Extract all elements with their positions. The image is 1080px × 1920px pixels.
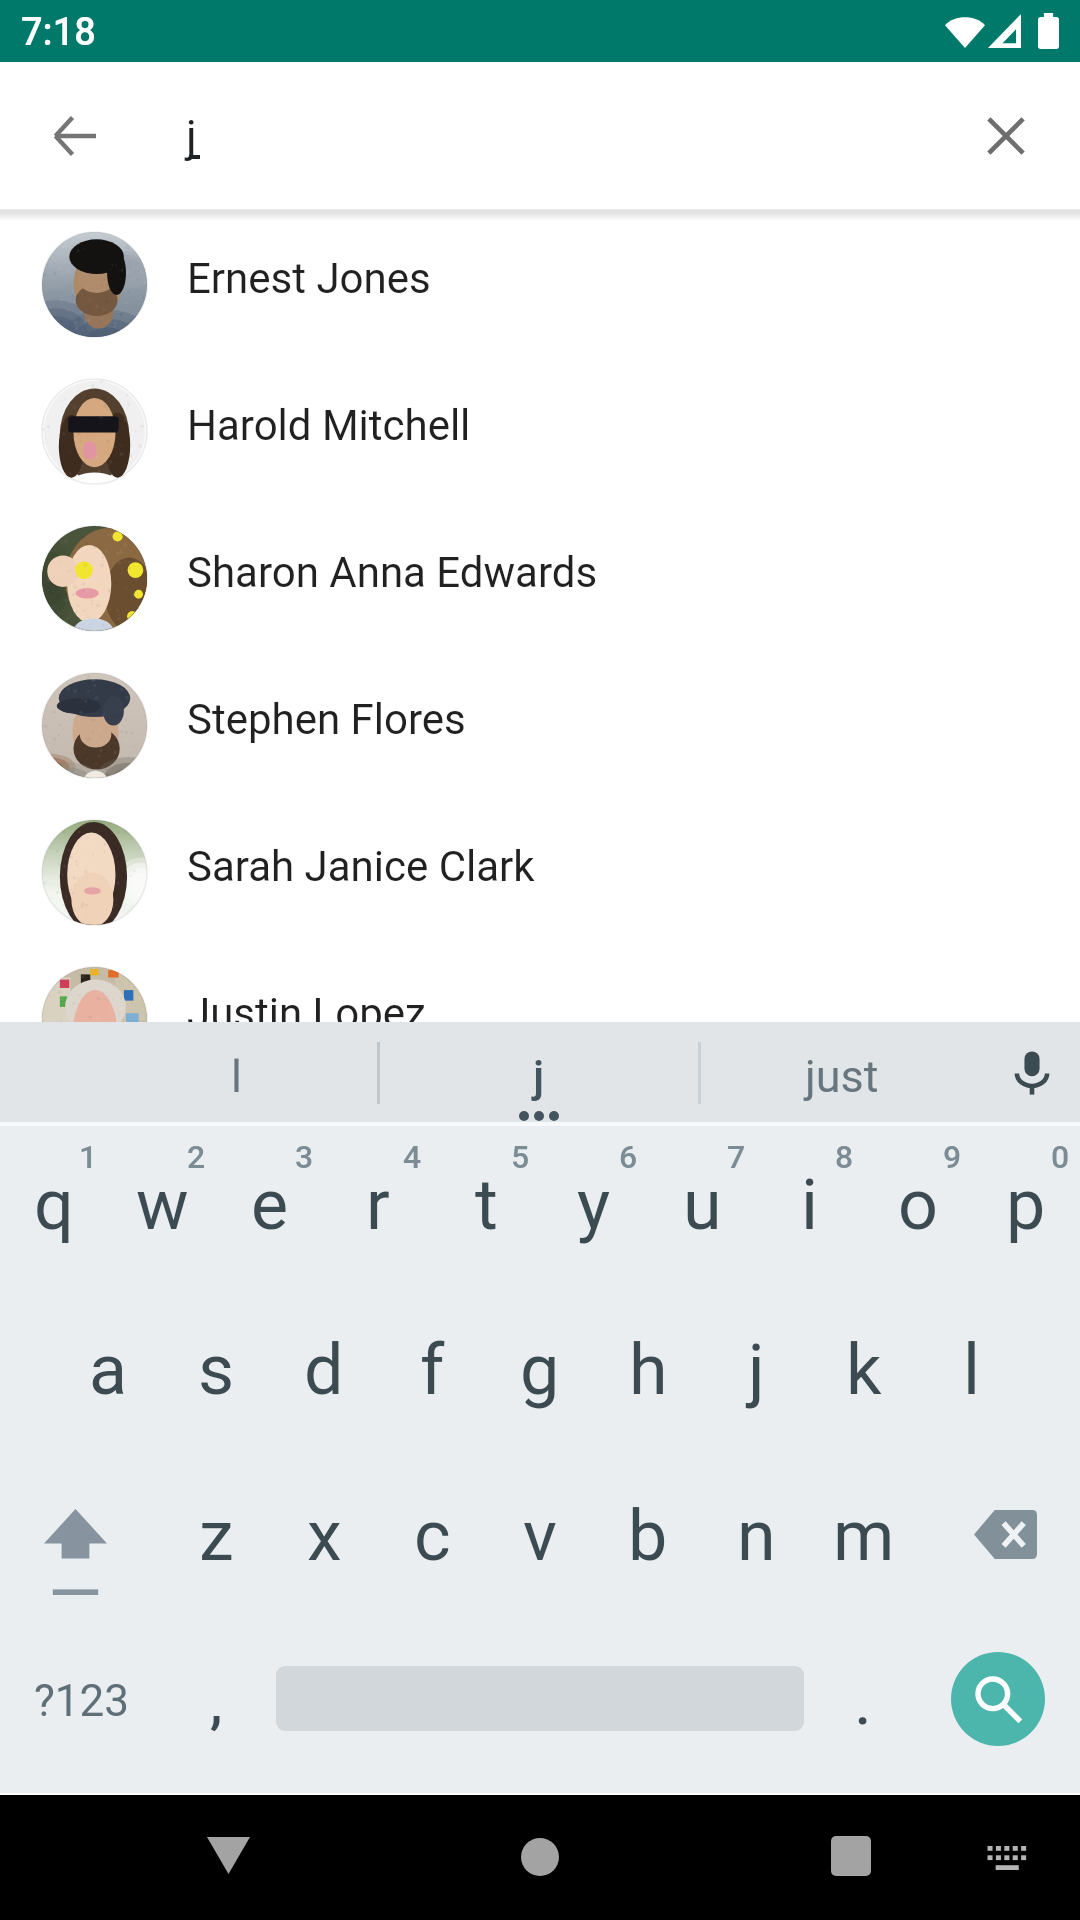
button[interactable]: g xyxy=(486,1292,594,1458)
staticText: , xyxy=(210,1670,223,1736)
staticText: b xyxy=(628,1495,668,1577)
staticText: f xyxy=(420,1329,445,1411)
staticText: x xyxy=(307,1495,342,1577)
staticText: 5 xyxy=(511,1138,530,1176)
button[interactable]: 4 xyxy=(324,1126,432,1292)
staticText: Stephen Flores xyxy=(187,695,466,744)
staticText: i xyxy=(801,1164,819,1246)
staticText: j xyxy=(748,1329,765,1411)
button[interactable]: Clear search xyxy=(958,88,1054,184)
button[interactable]: Shift xyxy=(0,1458,162,1624)
staticText: 4 xyxy=(403,1138,422,1176)
staticText: 0 xyxy=(1051,1138,1070,1176)
button[interactable]: Delete xyxy=(918,1458,1080,1624)
staticText: o xyxy=(898,1164,938,1246)
staticText: l xyxy=(963,1329,981,1411)
staticText: Justin Lopez xyxy=(187,989,426,1038)
staticText: Ernest Jones xyxy=(187,254,431,303)
staticText: n xyxy=(737,1495,776,1577)
staticText: 6 xyxy=(619,1138,638,1176)
staticText: q xyxy=(34,1164,74,1246)
staticText: 7:18 xyxy=(21,10,96,55)
button[interactable]: x xyxy=(270,1458,378,1624)
button[interactable]: s xyxy=(162,1292,270,1458)
staticText: p xyxy=(1006,1164,1046,1246)
button[interactable]: just xyxy=(692,1022,992,1124)
staticText: 8 xyxy=(835,1138,854,1176)
staticText: a xyxy=(89,1329,128,1411)
button[interactable]: Space xyxy=(276,1624,804,1793)
button[interactable]: h xyxy=(594,1292,702,1458)
button[interactable]: 9 xyxy=(864,1126,972,1292)
button[interactable]: b xyxy=(594,1458,702,1624)
staticText: g xyxy=(520,1329,560,1411)
staticText: 7 xyxy=(727,1138,746,1176)
staticText: r xyxy=(366,1164,390,1246)
button[interactable]: Switch keyboard xyxy=(963,1807,1053,1897)
staticText: s xyxy=(198,1329,235,1411)
button[interactable]: l xyxy=(86,1022,386,1124)
staticText: j xyxy=(186,110,197,163)
button[interactable]: Recents xyxy=(796,1801,906,1911)
button[interactable]: Sarah Janice Clark xyxy=(0,799,1080,946)
button[interactable]: Home xyxy=(485,1801,595,1911)
staticText: 3 xyxy=(295,1138,314,1176)
staticText: . xyxy=(855,1672,871,1738)
staticText: Sharon Anna Edwards xyxy=(187,548,598,597)
button[interactable]: n xyxy=(702,1458,810,1624)
staticText: h xyxy=(629,1329,668,1411)
button[interactable]: 7 xyxy=(648,1126,756,1292)
button[interactable]: z xyxy=(162,1458,270,1624)
button[interactable]: . xyxy=(808,1624,918,1793)
staticText: y xyxy=(577,1164,611,1246)
staticText: Sarah Janice Clark xyxy=(187,842,535,891)
staticText: 9 xyxy=(943,1138,962,1176)
button[interactable]: , xyxy=(160,1624,280,1793)
staticText: v xyxy=(523,1495,557,1577)
staticText: u xyxy=(683,1164,722,1246)
button[interactable]: j xyxy=(702,1292,810,1458)
staticText: w xyxy=(136,1164,189,1246)
staticText: Harold Mitchell xyxy=(187,401,471,450)
button[interactable]: Justin Lopez xyxy=(0,946,1080,1093)
button[interactable]: 3 xyxy=(216,1126,324,1292)
staticText: c xyxy=(414,1495,451,1577)
button[interactable]: Back xyxy=(173,1801,283,1911)
button[interactable]: k xyxy=(810,1292,918,1458)
staticText: just xyxy=(805,1050,879,1103)
button[interactable]: Ernest Jones xyxy=(0,211,1080,358)
staticText: ?123 xyxy=(34,1675,129,1727)
button[interactable]: a xyxy=(54,1292,162,1458)
button[interactable]: Voice input xyxy=(984,1025,1080,1121)
button[interactable]: 2 xyxy=(108,1126,216,1292)
button[interactable]: 5 xyxy=(432,1126,540,1292)
button[interactable]: Harold Mitchell xyxy=(0,358,1080,505)
staticText: z xyxy=(199,1495,234,1577)
staticText: k xyxy=(846,1329,882,1411)
button[interactable]: Search xyxy=(951,1652,1045,1746)
button[interactable]: 8 xyxy=(756,1126,864,1292)
button[interactable]: 0 xyxy=(972,1126,1080,1292)
button[interactable]: ?123 xyxy=(0,1624,188,1793)
staticText: 1 xyxy=(79,1138,98,1176)
button[interactable]: f xyxy=(378,1292,486,1458)
button[interactable]: Sharon Anna Edwards xyxy=(0,505,1080,652)
button[interactable]: Stephen Flores xyxy=(0,652,1080,799)
staticText: l xyxy=(231,1050,242,1103)
staticText: m xyxy=(833,1495,895,1577)
staticText: 2 xyxy=(187,1138,206,1176)
button[interactable]: Back xyxy=(27,88,123,184)
button[interactable]: v xyxy=(486,1458,594,1624)
button[interactable]: j xyxy=(389,1022,689,1124)
button[interactable]: d xyxy=(270,1292,378,1458)
staticText: j xyxy=(533,1050,545,1103)
staticText: e xyxy=(251,1164,289,1246)
staticText: t xyxy=(475,1164,498,1246)
button[interactable]: l xyxy=(918,1292,1026,1458)
staticText: d xyxy=(304,1329,344,1411)
button[interactable]: 6 xyxy=(540,1126,648,1292)
button[interactable]: c xyxy=(378,1458,486,1624)
button[interactable]: 1 xyxy=(0,1126,108,1292)
button[interactable]: m xyxy=(810,1458,918,1624)
